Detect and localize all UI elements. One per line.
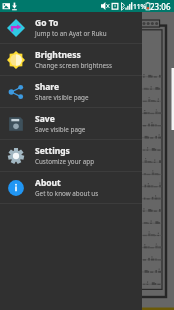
staticText: Change screen brightness [35,61,113,70]
staticText: Go To [35,17,59,29]
staticText: Customize your app [35,157,95,166]
button[interactable]: About [0,172,142,203]
button[interactable]: Share [0,76,142,107]
staticText: About [35,177,61,189]
staticText: Brightness [35,49,81,61]
staticText: Settings [35,145,70,157]
other: Save [7,115,25,133]
staticText: Save [35,113,55,125]
staticText: Jump to an Ayat or Ruku [35,29,107,38]
other: Brightness [7,51,25,69]
staticText: 11% [133,2,147,11]
button[interactable]: Go To [0,12,142,43]
staticText: Save visible page [35,125,86,134]
button[interactable]: Save [0,108,142,139]
button[interactable]: Settings [0,140,142,171]
other: About [7,179,25,197]
other: Settings [7,147,25,165]
staticText: 23:06 [150,1,171,12]
staticText: Share [35,81,60,93]
staticText: Share visible page [35,93,89,102]
button[interactable]: Brightness [0,44,142,75]
staticText: Get to know about us [35,189,99,198]
other: Share [7,83,25,101]
other: Go To [7,19,25,37]
